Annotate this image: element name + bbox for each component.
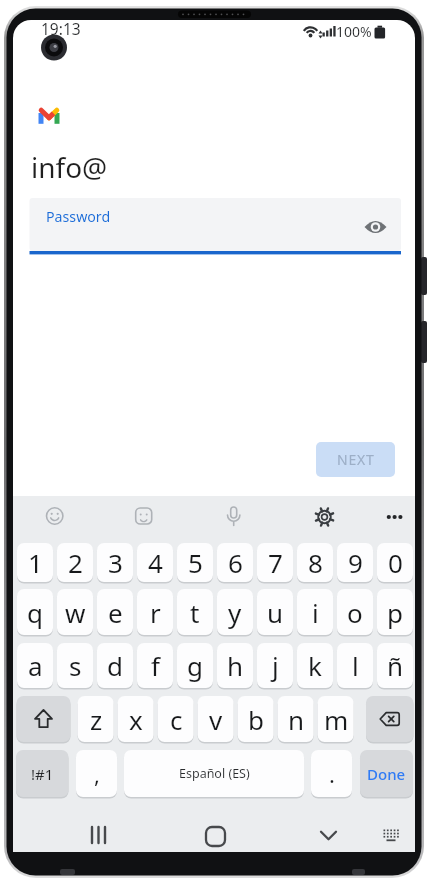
button[interactable]: .: [311, 750, 352, 797]
button[interactable]: [309, 816, 349, 854]
button[interactable]: 7: [257, 543, 293, 582]
button[interactable]: w: [57, 589, 93, 635]
staticText: 0: [388, 545, 403, 580]
staticText: n: [288, 702, 305, 737]
button[interactable]: [124, 750, 304, 797]
staticText: 6: [228, 545, 243, 580]
staticText: w: [65, 595, 86, 630]
button[interactable]: f: [137, 643, 173, 688]
staticText: k: [308, 648, 322, 683]
button[interactable]: 6: [217, 543, 253, 582]
staticText: h: [227, 648, 244, 683]
button[interactable]: [79, 816, 119, 854]
staticText: e: [108, 595, 123, 630]
button[interactable]: 8: [297, 543, 333, 582]
button[interactable]: y: [217, 589, 253, 635]
button[interactable]: d: [97, 643, 133, 688]
button[interactable]: l: [337, 643, 373, 688]
button[interactable]: 9: [337, 543, 373, 582]
staticText: a: [28, 648, 43, 683]
staticText: x: [129, 702, 143, 737]
staticText: r: [150, 595, 161, 630]
staticText: 100%: [336, 22, 372, 41]
button[interactable]: p: [377, 589, 413, 635]
staticText: 3: [108, 545, 123, 580]
button[interactable]: h: [217, 643, 253, 688]
button[interactable]: g: [177, 643, 213, 688]
staticText: NEXT: [337, 450, 375, 469]
button[interactable]: 5: [177, 543, 213, 582]
button[interactable]: 0: [377, 543, 413, 582]
staticText: 5: [188, 545, 203, 580]
button[interactable]: [196, 816, 236, 854]
staticText: p: [387, 595, 403, 630]
staticText: l: [352, 648, 359, 683]
button[interactable]: r: [137, 589, 173, 635]
staticText: i: [312, 595, 319, 630]
staticText: v: [209, 702, 223, 737]
button[interactable]: [366, 696, 414, 742]
staticText: t: [190, 595, 200, 630]
button[interactable]: [128, 501, 160, 533]
button[interactable]: z: [78, 696, 114, 742]
staticText: y: [228, 595, 242, 630]
staticText: 9: [348, 545, 363, 580]
staticText: f: [151, 648, 160, 683]
staticText: 7: [268, 545, 283, 580]
button[interactable]: i: [297, 589, 333, 635]
button[interactable]: !#1: [16, 750, 69, 797]
button[interactable]: m: [318, 696, 354, 742]
button[interactable]: [363, 213, 389, 241]
staticText: b: [248, 702, 264, 737]
button[interactable]: j: [257, 643, 293, 688]
staticText: ,: [94, 759, 100, 789]
button[interactable]: v: [198, 696, 234, 742]
button[interactable]: a: [17, 643, 53, 688]
staticText: m: [324, 702, 349, 737]
button[interactable]: 4: [137, 543, 173, 582]
button[interactable]: 2: [57, 543, 93, 582]
button[interactable]: s: [57, 643, 93, 688]
staticText: u: [267, 595, 284, 630]
staticText: 8: [308, 545, 323, 580]
button[interactable]: t: [177, 589, 213, 635]
staticText: Español (ES): [179, 765, 250, 782]
staticText: .: [329, 759, 335, 789]
button[interactable]: [30, 198, 402, 254]
button[interactable]: ,: [76, 750, 117, 797]
button[interactable]: u: [257, 589, 293, 635]
button[interactable]: o: [337, 589, 373, 635]
staticText: q: [27, 595, 43, 630]
staticText: c: [170, 702, 183, 737]
staticText: !#1: [31, 764, 54, 784]
staticText: 1: [28, 545, 43, 580]
button[interactable]: 1: [17, 543, 53, 582]
button[interactable]: [373, 816, 409, 854]
button[interactable]: x: [118, 696, 154, 742]
button[interactable]: c: [158, 696, 194, 742]
button[interactable]: [360, 750, 413, 797]
button[interactable]: [309, 501, 341, 533]
button[interactable]: [39, 501, 71, 533]
staticText: 4: [148, 545, 163, 580]
button[interactable]: k: [297, 643, 333, 688]
button[interactable]: NEXT: [316, 442, 395, 477]
button[interactable]: b: [238, 696, 274, 742]
button[interactable]: 3: [97, 543, 133, 582]
staticText: info@: [31, 148, 108, 186]
button[interactable]: [218, 501, 250, 533]
staticText: Done: [367, 764, 406, 784]
button[interactable]: ñ: [377, 643, 413, 688]
staticText: Password: [46, 207, 111, 226]
staticText: j: [272, 648, 279, 683]
button[interactable]: e: [97, 589, 133, 635]
button[interactable]: q: [17, 589, 53, 635]
staticText: s: [69, 648, 82, 683]
button[interactable]: [379, 501, 411, 533]
staticText: g: [187, 648, 203, 683]
staticText: o: [347, 595, 363, 630]
button[interactable]: n: [278, 696, 314, 742]
staticText: d: [107, 648, 123, 683]
staticText: ñ: [387, 648, 404, 683]
button[interactable]: [17, 696, 71, 742]
